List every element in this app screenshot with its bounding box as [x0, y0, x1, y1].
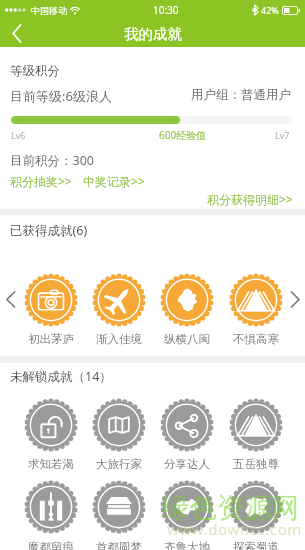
staticText: 初出茅庐: [28, 332, 74, 346]
staticText: 首都圆梦: [96, 540, 142, 550]
staticText: 等级积分: [10, 63, 60, 79]
staticText: 目前等级:6级浪人: [10, 87, 112, 105]
button[interactable]: 积分获得明细>>: [207, 191, 293, 207]
button[interactable]: Previous achievements: [2, 288, 18, 310]
staticText: 求知若渴: [28, 457, 74, 471]
staticText: Lv6: [11, 129, 26, 141]
button[interactable]: 大旅行家: [85, 399, 153, 471]
button[interactable]: 不惧高寒: [222, 274, 290, 346]
staticText: Lv7: [275, 129, 290, 141]
button[interactable]: 分享达人: [153, 399, 221, 471]
staticText: 魔都留痕: [28, 540, 74, 550]
button[interactable]: Next achievements: [287, 288, 303, 310]
button[interactable]: 五岳独尊: [222, 399, 290, 471]
staticText: 中国移动: [31, 5, 67, 16]
button[interactable]: 渐入佳境: [85, 274, 153, 346]
staticText: 600经验值: [159, 128, 207, 142]
button[interactable]: 求知若渴: [17, 399, 85, 471]
button[interactable]: 魔都留痕: [17, 481, 85, 550]
staticText: 已获得成就(6): [10, 222, 88, 239]
staticText: www.downcc.com: [167, 519, 302, 539]
staticText: 用户组：普通用户: [191, 87, 291, 103]
staticText: 纵横八闽: [164, 332, 210, 346]
staticText: 探索蜀道: [233, 540, 279, 550]
button[interactable]: 纵横八闽: [153, 274, 221, 346]
staticText: 大旅行家: [96, 457, 142, 471]
staticText: 不惧高寒: [233, 332, 279, 346]
staticText: 未解锁成就（14）: [10, 368, 112, 385]
staticText: 齐鲁大地: [164, 540, 210, 550]
button[interactable]: 中奖记录>>: [83, 173, 145, 189]
staticText: 42%: [261, 4, 279, 16]
button[interactable]: 齐鲁大地: [153, 481, 221, 550]
button[interactable]: 首都圆梦: [85, 481, 153, 550]
staticText: 分享达人: [164, 457, 210, 471]
button[interactable]: 初出茅庐: [17, 274, 85, 346]
staticText: 渐入佳境: [96, 332, 142, 346]
staticText: 我的成就: [124, 25, 182, 43]
staticText: 绿色资源网: [162, 491, 300, 526]
button[interactable]: 积分抽奖>>: [10, 173, 72, 189]
staticText: 目前积分：300: [10, 152, 94, 169]
staticText: 10:30: [153, 3, 179, 17]
staticText: 五岳独尊: [233, 457, 279, 471]
button[interactable]: Back: [0, 20, 34, 47]
button[interactable]: 探索蜀道: [222, 481, 290, 550]
